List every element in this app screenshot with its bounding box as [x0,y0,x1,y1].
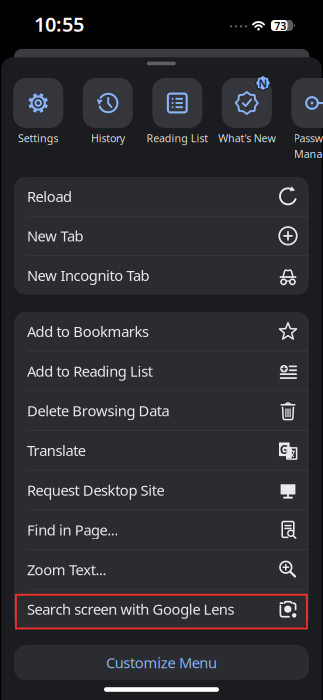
button[interactable]: Request Desktop Site [14,471,309,509]
staticText: Delete Browsing Data [27,401,169,420]
staticText: New Incognito Tab [27,266,150,285]
button[interactable]: Add to Bookmarks [14,312,309,351]
staticText: Zoom Text... [27,560,107,579]
staticText: History [91,131,125,145]
staticText: Reload [27,187,72,206]
button[interactable]: Search screen with Google Lens [14,590,309,629]
staticText: Settings [18,131,58,145]
staticText: Translate [27,441,86,460]
button[interactable]: Translate [14,431,309,470]
staticText: Reading List [146,131,208,145]
staticText: Customize Menu [106,653,217,672]
button[interactable]: New Incognito Tab [14,256,309,295]
button[interactable]: Find in Page... [14,510,309,549]
button[interactable]: Drag indicator [147,62,176,65]
staticText: N [258,76,267,90]
staticText: G [280,441,289,457]
staticText: 10:55 [34,11,84,37]
staticText: Find in Page... [27,520,118,539]
button[interactable]: Reload [14,177,309,216]
staticText: 73 [274,19,286,33]
staticText: New Tab [27,226,84,246]
button[interactable]: Password [278,78,323,158]
button[interactable]: Zoom Text... [14,550,309,589]
button[interactable]: Settings [0,78,76,158]
button[interactable]: Delete Browsing Data [14,391,309,430]
button[interactable]: What's New [209,78,285,158]
staticText: Request Desktop Site [27,480,164,500]
button[interactable]: New Tab [14,216,309,255]
button[interactable]: Reading List [139,78,215,158]
staticText: Password [294,131,323,145]
staticText: What's New [218,131,275,145]
button[interactable]: Customize Menu [14,645,309,680]
staticText: Add to Bookmarks [27,321,149,341]
button[interactable]: History [70,78,146,158]
staticText: Add to Reading List [27,361,153,381]
staticText: Manager [294,147,323,161]
button[interactable]: Add to Reading List [14,351,309,390]
staticText: Search screen with Google Lens [27,599,234,619]
